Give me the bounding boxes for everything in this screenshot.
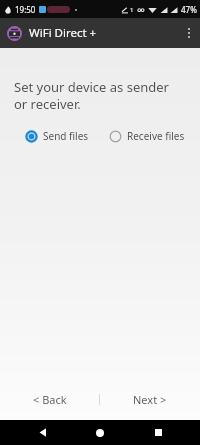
staticText: < Back [33, 392, 67, 407]
button[interactable]: Receive files [109, 129, 185, 143]
button[interactable]: Back [28, 420, 58, 445]
staticText: 1 [130, 6, 134, 14]
button[interactable]: Recent apps [143, 420, 173, 445]
staticText: Next > [133, 392, 167, 407]
staticText: WiFi Direct + [29, 25, 97, 41]
button[interactable]: Send files [25, 129, 89, 143]
staticText: Send files [43, 129, 89, 143]
staticText: 47% [181, 4, 197, 15]
button[interactable]: < Back [0, 388, 99, 411]
staticText: Set your device as sender or receiver. [14, 78, 176, 113]
button[interactable]: More options [178, 18, 200, 48]
staticText: Receive files [127, 129, 185, 143]
button[interactable]: Home [85, 420, 115, 445]
staticText: 19:50 [15, 4, 36, 15]
button[interactable]: Next > [100, 388, 200, 411]
